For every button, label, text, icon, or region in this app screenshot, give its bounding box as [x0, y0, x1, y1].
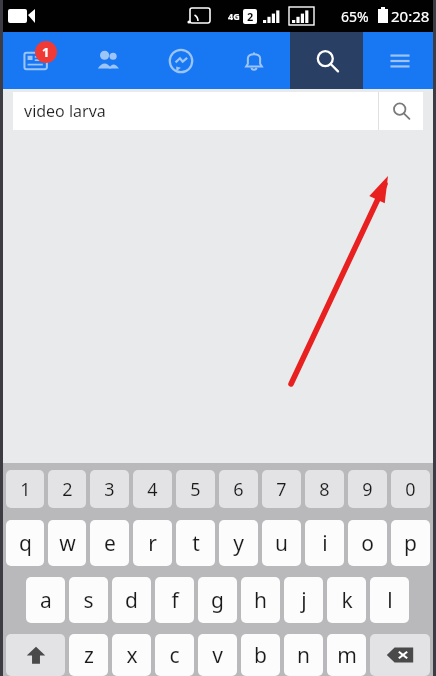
staticText: t — [192, 529, 200, 558]
staticText: j — [301, 586, 307, 615]
button[interactable]: h — [241, 577, 280, 623]
button[interactable]: 0 — [391, 470, 430, 508]
staticText: 2 — [62, 477, 73, 502]
staticText: a — [40, 586, 52, 615]
button[interactable]: l — [370, 577, 409, 623]
button[interactable]: video larva — [13, 92, 378, 130]
staticText: q — [19, 529, 32, 558]
button[interactable]: x — [112, 634, 151, 676]
button[interactable]: p — [391, 520, 430, 566]
staticText: 9 — [362, 477, 373, 502]
staticText: s — [83, 586, 94, 615]
button[interactable]: Messenger — [144, 32, 217, 89]
staticText: l — [387, 586, 393, 615]
staticText: e — [104, 529, 116, 558]
staticText: 6 — [233, 477, 244, 502]
button[interactable]: v — [198, 634, 237, 676]
button[interactable]: j — [284, 577, 323, 623]
staticText: 7 — [276, 477, 287, 502]
staticText: 5 — [190, 477, 201, 502]
button[interactable]: y — [219, 520, 258, 566]
staticText: u — [275, 529, 288, 558]
button[interactable]: z — [69, 634, 108, 676]
staticText: v — [212, 641, 223, 670]
staticText: n — [297, 641, 310, 670]
button[interactable]: 5 — [176, 470, 215, 508]
staticText: x — [126, 641, 138, 670]
staticText: 20:28 — [391, 6, 430, 26]
button[interactable]: b — [241, 634, 280, 676]
staticText: 4 — [147, 477, 158, 502]
staticText: 0 — [405, 477, 416, 502]
staticText: 8 — [319, 477, 330, 502]
staticText: k — [341, 586, 353, 615]
button[interactable]: 3 — [90, 470, 129, 508]
button[interactable]: r — [133, 520, 172, 566]
staticText: 1 — [20, 477, 31, 502]
staticText: d — [125, 586, 138, 615]
button[interactable]: 6 — [219, 470, 258, 508]
button[interactable]: 4 — [133, 470, 172, 508]
staticText: f — [171, 586, 179, 615]
staticText: r — [148, 529, 157, 558]
staticText: 4G — [228, 10, 240, 22]
staticText: 65% — [341, 7, 369, 26]
button[interactable]: 7 — [262, 470, 301, 508]
staticText: 1 — [42, 43, 50, 61]
button[interactable]: i — [305, 520, 344, 566]
button[interactable]: a — [26, 577, 65, 623]
button[interactable]: 2 — [48, 470, 86, 508]
staticText: o — [361, 529, 374, 558]
button[interactable]: 9 — [348, 470, 387, 508]
button[interactable]: k — [327, 577, 366, 623]
staticText: 2 — [247, 9, 254, 24]
staticText: p — [404, 529, 417, 558]
button[interactable]: u — [262, 520, 301, 566]
staticText: z — [84, 641, 94, 670]
button[interactable]: o — [348, 520, 387, 566]
staticText: y — [233, 529, 244, 558]
button[interactable]: d — [112, 577, 151, 623]
button[interactable]: t — [176, 520, 215, 566]
button[interactable]: Friends — [72, 32, 144, 89]
staticText: b — [254, 641, 267, 670]
button[interactable]: f — [155, 577, 194, 623]
button[interactable]: q — [6, 520, 44, 566]
button[interactable]: Notifications — [217, 32, 290, 89]
button[interactable]: g — [198, 577, 237, 623]
staticText: c — [169, 641, 180, 670]
staticText: h — [254, 586, 267, 615]
button[interactable]: n — [284, 634, 323, 676]
staticText: i — [322, 529, 328, 558]
button[interactable]: m — [327, 634, 366, 676]
staticText: g — [211, 586, 224, 615]
staticText: video larva — [24, 100, 106, 122]
button[interactable]: 1 — [6, 470, 44, 508]
button[interactable]: Search — [379, 92, 423, 130]
button[interactable]: 8 — [305, 470, 344, 508]
button[interactable]: c — [155, 634, 194, 676]
button[interactable]: Shift — [6, 634, 65, 676]
button[interactable]: Backspace — [370, 634, 430, 676]
staticText: w — [59, 529, 76, 558]
button[interactable]: News Feed — [0, 32, 72, 89]
button[interactable]: s — [69, 577, 108, 623]
button[interactable]: w — [48, 520, 86, 566]
button[interactable]: Menu — [363, 32, 436, 89]
staticText: m — [337, 641, 357, 670]
button[interactable]: Search — [290, 32, 363, 89]
staticText: 3 — [104, 477, 115, 502]
button[interactable]: e — [90, 520, 129, 566]
